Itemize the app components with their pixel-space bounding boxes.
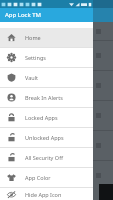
button[interactable]: Settings	[0, 48, 93, 67]
button[interactable]: App Color	[0, 168, 93, 187]
button[interactable]: Hide App Icon	[0, 188, 93, 200]
staticText: Break In Alerts	[25, 94, 63, 101]
staticText: Locked Apps	[25, 114, 58, 121]
staticText: All Security Off	[25, 154, 63, 161]
button[interactable]: Break In Alerts	[0, 88, 93, 107]
staticText: Vault	[25, 74, 39, 81]
staticText: Settings	[25, 54, 46, 61]
staticText: Home	[25, 34, 41, 41]
staticText: Unlocked Apps	[25, 134, 64, 141]
button[interactable]: Vault	[0, 68, 93, 87]
button[interactable]: Unlocked Apps	[0, 128, 93, 147]
staticText: App Color	[25, 174, 51, 181]
staticText: Hide App Icon	[25, 191, 62, 198]
button[interactable]: All Security Off	[0, 148, 93, 167]
button[interactable]: Locked Apps	[0, 108, 93, 127]
staticText: App Lock TM	[5, 11, 41, 19]
button[interactable]: Home	[0, 28, 93, 47]
